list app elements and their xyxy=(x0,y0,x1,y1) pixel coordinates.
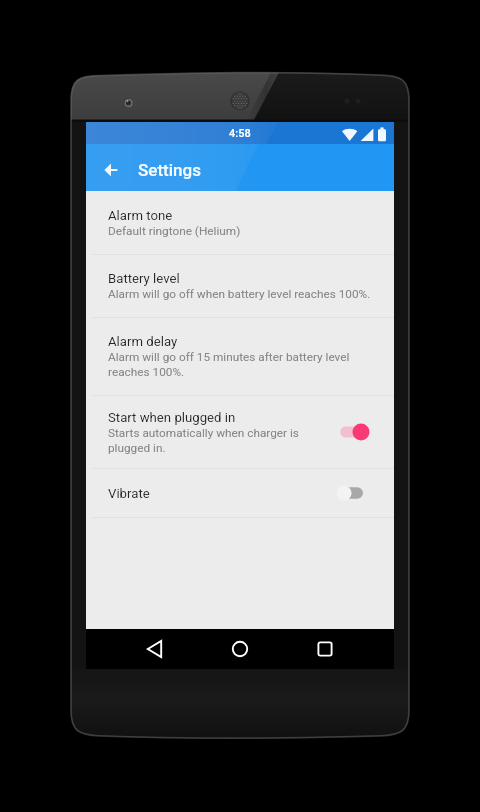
staticText: Settings xyxy=(138,160,201,180)
staticText: Alarm will go off 15 minutes after batte… xyxy=(108,350,382,379)
button[interactable]: Start when plugged in xyxy=(86,396,394,468)
staticText: Alarm will go off when battery level rea… xyxy=(108,287,371,301)
button[interactable]: Vibrate xyxy=(335,476,375,510)
button[interactable]: Battery level xyxy=(86,255,394,317)
button[interactable]: Alarm tone xyxy=(86,191,394,254)
staticText: Default ringtone (Helium) xyxy=(108,224,241,238)
staticText: Battery level xyxy=(108,271,180,286)
button[interactable]: Navigate up xyxy=(98,157,124,183)
button[interactable]: Home xyxy=(218,629,262,669)
button[interactable]: Alarm delay xyxy=(86,318,394,395)
staticText: Vibrate xyxy=(108,486,150,501)
button[interactable]: Back xyxy=(133,629,177,669)
staticText: Start when plugged in xyxy=(108,410,236,425)
button[interactable]: Recent apps xyxy=(303,629,347,669)
staticText: Alarm tone xyxy=(108,208,173,223)
staticText: Starts automatically when charger is plu… xyxy=(108,426,318,455)
staticText: Alarm delay xyxy=(108,334,178,349)
staticText: 4:58 xyxy=(229,127,251,140)
button[interactable]: Vibrate xyxy=(86,469,394,517)
button[interactable]: Start when plugged in xyxy=(335,415,375,449)
